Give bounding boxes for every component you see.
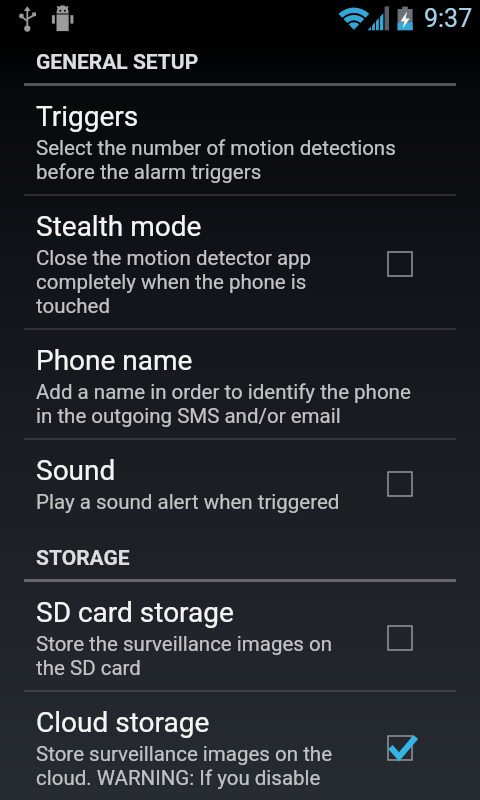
staticText: Phone name <box>36 344 193 377</box>
button[interactable]: Stealth mode <box>0 196 480 328</box>
staticText: Play a sound alert when triggered <box>36 490 340 514</box>
button[interactable]: Disabled <box>378 462 422 506</box>
staticText: Sound <box>36 454 116 487</box>
button[interactable]: Triggers <box>0 86 480 194</box>
staticText: Add a name in order to identify the phon… <box>36 380 411 428</box>
button[interactable]: Phone name <box>0 330 480 438</box>
staticText: Store the surveillance images on the SD … <box>36 632 332 680</box>
staticText: SD card storage <box>36 596 234 629</box>
staticText: STORAGE <box>36 546 130 571</box>
staticText: GENERAL SETUP <box>36 50 199 75</box>
staticText: Select the number of motion detections b… <box>36 136 396 184</box>
button[interactable]: SD card storage <box>0 582 480 690</box>
staticText: 9:37 <box>424 4 473 33</box>
button[interactable]: Cloud storage <box>0 692 480 800</box>
button[interactable]: Disabled <box>378 616 422 660</box>
button[interactable]: Enabled <box>378 726 422 770</box>
staticText: Close the motion detector app completely… <box>36 246 312 318</box>
staticText: Triggers <box>36 100 139 133</box>
button[interactable]: Sound <box>0 440 480 524</box>
staticText: Store surveillance images on the cloud. … <box>36 742 332 790</box>
staticText: Cloud storage <box>36 706 210 739</box>
staticText: Stealth mode <box>36 210 202 243</box>
button[interactable]: Disabled <box>378 242 422 286</box>
